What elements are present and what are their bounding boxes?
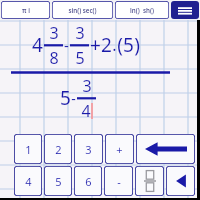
staticText: 4 — [81, 100, 91, 121]
button[interactable]: 6 — [74, 166, 102, 196]
staticText: π i — [22, 6, 30, 14]
staticText: 5 — [60, 85, 71, 111]
button[interactable]: + — [105, 134, 134, 164]
staticText: 3 — [49, 22, 59, 44]
button[interactable]: 2 — [44, 134, 72, 164]
button[interactable]: 1 — [14, 134, 42, 164]
button[interactable]: 3 — [74, 134, 103, 164]
button[interactable]: Backspace — [136, 134, 195, 164]
staticText: sin() sec() — [68, 6, 97, 14]
staticText: ln() sh() — [130, 6, 154, 14]
staticText: 6 — [85, 174, 92, 189]
button[interactable]: ln() sh() — [115, 1, 169, 19]
staticText: 1 — [25, 142, 32, 157]
staticText: 2 — [55, 142, 62, 157]
staticText: ( — [117, 32, 123, 58]
button[interactable]: 5 — [44, 166, 72, 196]
staticText: ) — [134, 32, 140, 58]
staticText: 4 — [32, 32, 43, 58]
staticText: + — [90, 32, 101, 58]
button[interactable]: sin() sec() — [52, 1, 113, 19]
button[interactable]: Menu — [171, 1, 199, 19]
staticText: . — [112, 34, 117, 56]
staticText: 4 — [25, 174, 32, 189]
staticText: 5 — [123, 32, 134, 58]
button[interactable]: - — [104, 166, 133, 196]
staticText: 3 — [85, 142, 92, 157]
button[interactable]: π i — [1, 1, 50, 19]
button[interactable]: Fraction — [135, 166, 164, 196]
staticText: + — [116, 142, 123, 157]
staticText: 5 — [75, 47, 85, 69]
staticText: 8 — [49, 47, 59, 69]
staticText: - — [71, 89, 76, 108]
button[interactable]: Left — [166, 166, 195, 196]
staticText: 5 — [55, 174, 62, 189]
button[interactable]: 4 — [14, 166, 42, 196]
staticText: 3 — [75, 22, 85, 44]
staticText: 3 — [82, 75, 92, 97]
staticText: - — [117, 174, 121, 189]
staticText: 2 — [101, 32, 112, 58]
staticText: - — [64, 35, 69, 55]
